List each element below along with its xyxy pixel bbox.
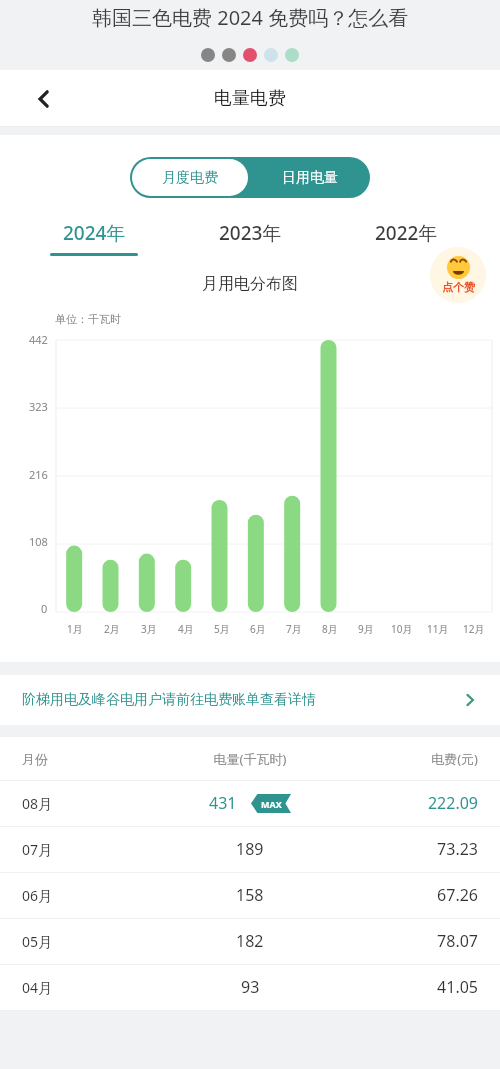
button[interactable]: 点个赞 (430, 247, 486, 303)
staticText: 431 (209, 792, 237, 814)
staticText: 韩国三色电费 2024 免费吗？怎么看 (92, 4, 409, 31)
staticText: 5月 (214, 622, 230, 636)
button[interactable]: 阶梯用电及峰谷电用户请前往电费账单查看详情 (0, 675, 500, 725)
staticText: 电费(元) (331, 750, 478, 768)
staticText: 158 (236, 884, 264, 906)
staticText: 67.26 (331, 884, 478, 906)
staticText: 2024年 (63, 220, 126, 246)
staticText: 05月 (22, 932, 169, 951)
staticText: 06月 (22, 886, 169, 905)
button[interactable]: Back (24, 79, 64, 119)
button[interactable]: 05月 (0, 918, 500, 964)
staticText: 08月 (22, 794, 169, 813)
staticText: 216 (29, 467, 48, 482)
staticText: 10月 (391, 622, 413, 636)
staticText: 93 (241, 976, 260, 998)
staticText: 78.07 (331, 930, 478, 952)
staticText: 阶梯用电及峰谷电用户请前往电费账单查看详情 (22, 691, 462, 709)
staticText: 11月 (427, 622, 449, 636)
staticText: 323 (29, 399, 48, 414)
staticText: 1月 (67, 622, 83, 636)
button[interactable]: 2024年 (16, 220, 172, 256)
staticText: 2022年 (375, 220, 438, 246)
staticText: 442 (29, 332, 48, 347)
staticText: 电量电费 (214, 87, 286, 110)
button[interactable]: 2023年 (172, 220, 328, 256)
staticText: 41.05 (331, 976, 478, 998)
staticText: 8月 (322, 622, 338, 636)
staticText: 7月 (286, 622, 302, 636)
staticText: 点个赞 (442, 280, 475, 294)
staticText: 73.23 (331, 838, 478, 860)
staticText: 日用电量 (282, 169, 338, 187)
staticText: 2月 (104, 622, 120, 636)
staticText: 单位：千瓦时 (55, 312, 121, 326)
staticText: 9月 (358, 622, 374, 636)
button[interactable]: 06月 (0, 872, 500, 918)
staticText: 222.09 (331, 792, 478, 814)
staticText: 0 (41, 601, 48, 616)
button[interactable]: 2022年 (328, 220, 484, 256)
staticText: 6月 (250, 622, 266, 636)
staticText: 4月 (178, 622, 194, 636)
staticText: 月用电分布图 (0, 274, 500, 294)
staticText: 182 (236, 930, 264, 952)
staticText: 04月 (22, 978, 169, 997)
button[interactable]: 日用电量 (250, 157, 370, 198)
staticText: 3月 (141, 622, 157, 636)
staticText: 2023年 (219, 220, 282, 246)
button[interactable]: 07月 (0, 826, 500, 872)
staticText: 189 (236, 838, 264, 860)
staticText: 月度电费 (162, 169, 218, 187)
staticText: 108 (29, 534, 48, 549)
button[interactable]: 月度电费 (132, 159, 248, 196)
staticText: 07月 (22, 840, 169, 859)
staticText: 月份 (22, 751, 169, 767)
button[interactable]: 04月 (0, 964, 500, 1010)
staticText: MAX (261, 798, 282, 810)
button[interactable]: 08月 (0, 780, 500, 826)
staticText: 12月 (463, 622, 485, 636)
staticText: 电量(千瓦时) (169, 750, 331, 768)
